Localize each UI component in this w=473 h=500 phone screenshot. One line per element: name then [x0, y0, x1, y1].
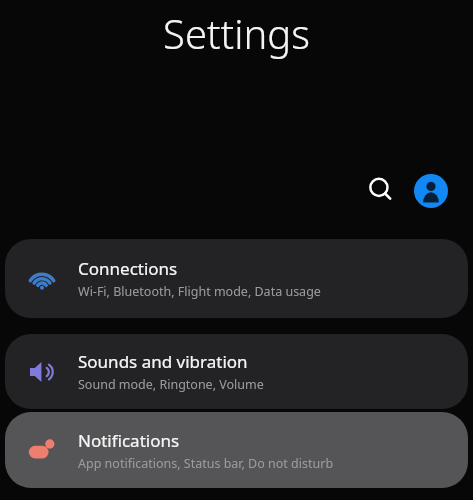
staticText: Wi-Fi, Bluetooth, Flight mode, Data usag…: [78, 283, 321, 300]
button[interactable]: Account: [409, 169, 453, 213]
staticText: Notifications: [78, 429, 180, 452]
staticText: Sounds and vibration: [78, 350, 248, 373]
staticText: App notifications, Status bar, Do not di…: [78, 455, 334, 472]
staticText: Sound mode, Ringtone, Volume: [78, 376, 264, 393]
staticText: Settings: [0, 6, 473, 60]
button[interactable]: Connections: [5, 239, 468, 318]
button[interactable]: Search: [360, 169, 402, 211]
button[interactable]: Notifications: [5, 412, 468, 488]
button[interactable]: Sounds and vibration: [5, 334, 468, 409]
staticText: Connections: [78, 257, 178, 280]
